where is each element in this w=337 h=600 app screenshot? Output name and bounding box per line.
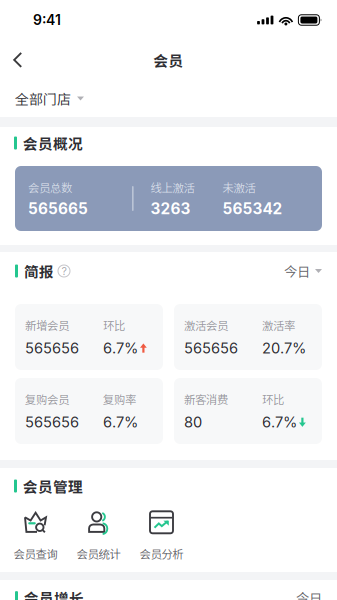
button[interactable]: 复购会员 bbox=[15, 378, 163, 444]
button[interactable]: 会员查询 bbox=[4, 511, 67, 561]
staticText: 环比 bbox=[103, 317, 125, 333]
button[interactable]: 今日 bbox=[284, 260, 322, 282]
staticText: 全部门店 bbox=[15, 88, 71, 109]
button[interactable]: 会员统计 bbox=[67, 511, 130, 561]
staticText: 复购会员 bbox=[25, 391, 69, 407]
staticText: 环比 bbox=[262, 391, 284, 407]
staticText: 6.7% bbox=[103, 413, 138, 431]
staticText: 565656 bbox=[25, 413, 79, 431]
button[interactable]: 说明 bbox=[54, 261, 74, 281]
staticText: 6.7% bbox=[262, 413, 297, 431]
staticText: 复购率 bbox=[103, 391, 136, 407]
staticText: 会员增长 bbox=[24, 587, 84, 600]
button[interactable]: 新客消费 bbox=[174, 378, 322, 444]
staticText: 会员查询 bbox=[13, 545, 57, 562]
staticText: 激活会员 bbox=[184, 317, 228, 333]
staticText: 会员管理 bbox=[23, 475, 83, 497]
staticText: 新增会员 bbox=[25, 317, 69, 333]
staticText: 激活率 bbox=[262, 317, 295, 333]
staticText: 565656 bbox=[25, 339, 79, 357]
staticText: ? bbox=[61, 264, 66, 277]
button[interactable]: 新增会员 bbox=[15, 304, 163, 370]
staticText: 3263 bbox=[151, 199, 191, 218]
staticText: 今日 bbox=[296, 588, 322, 600]
staticText: 565665 bbox=[28, 199, 88, 218]
staticText: 未激活 bbox=[223, 179, 256, 195]
staticText: 9:41 bbox=[33, 11, 61, 28]
staticText: 简报 bbox=[24, 260, 54, 282]
staticText: 今日 bbox=[284, 261, 310, 281]
staticText: 会员总数 bbox=[28, 179, 72, 195]
staticText: 新客消费 bbox=[184, 391, 228, 407]
staticText: 会员分析 bbox=[139, 545, 183, 562]
staticText: 80 bbox=[184, 413, 202, 431]
staticText: 565342 bbox=[223, 199, 283, 218]
staticText: 20.7% bbox=[262, 339, 306, 357]
staticText: 565656 bbox=[184, 339, 238, 357]
staticText: 线上激活 bbox=[151, 179, 195, 195]
button[interactable]: 返回 bbox=[0, 40, 35, 80]
button[interactable]: 激活会员 bbox=[174, 304, 322, 370]
staticText: 6.7% bbox=[103, 339, 138, 357]
button[interactable]: 全部门店 bbox=[0, 80, 99, 117]
button[interactable]: 会员分析 bbox=[130, 511, 193, 561]
staticText: 会员概况 bbox=[23, 132, 83, 154]
staticText: 会员统计 bbox=[76, 545, 120, 562]
staticText: 会员 bbox=[153, 49, 183, 71]
